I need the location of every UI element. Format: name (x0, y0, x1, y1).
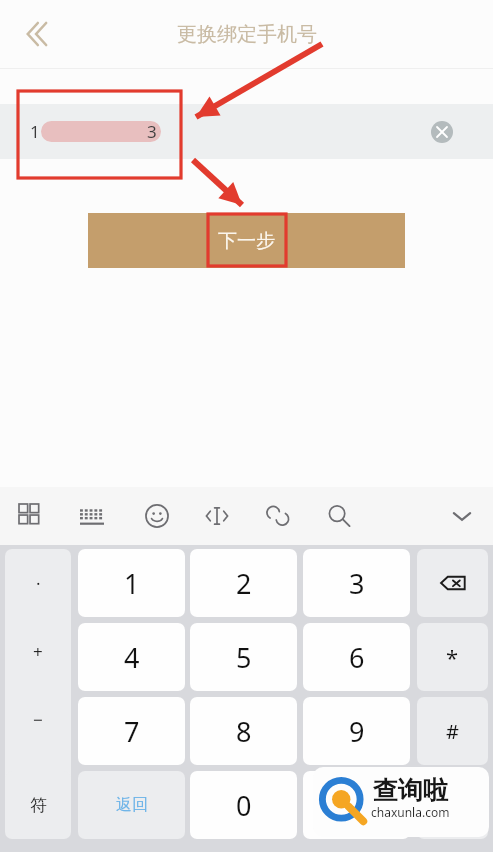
button[interactable]: 2 (190, 549, 297, 617)
staticText: 2 (236, 565, 252, 602)
staticText: 符 (30, 795, 47, 816)
button[interactable]: · (5, 549, 71, 821)
staticText: · (36, 572, 41, 595)
button[interactable]: 下一步 (88, 213, 405, 268)
staticText: 1 (30, 120, 40, 143)
staticText: 9 (349, 713, 365, 750)
staticText: 查询啦 (373, 775, 448, 806)
staticText: # (446, 718, 459, 745)
button[interactable]: 工具 0 (9, 494, 53, 538)
staticText: + (33, 640, 43, 663)
staticText: * (446, 642, 459, 672)
button[interactable]: # (417, 697, 488, 765)
button[interactable]: 8 (190, 697, 297, 765)
staticText: 3 (147, 120, 157, 143)
button[interactable]: 1 (78, 549, 185, 617)
button[interactable]: 清除 (431, 121, 453, 143)
button[interactable]: 工具 5 (317, 494, 361, 538)
button[interactable]: 0 (190, 771, 297, 839)
staticText: 返回 (116, 795, 148, 815)
button[interactable]: 工具 4 (256, 494, 300, 538)
button[interactable]: 1 (0, 104, 493, 159)
staticText: 0 (236, 787, 252, 824)
staticText: 1 (124, 565, 140, 602)
staticText: − (33, 708, 43, 731)
button[interactable]: 5 (190, 623, 297, 691)
button[interactable]: 退格 (417, 549, 488, 617)
button[interactable]: 返回 (78, 771, 185, 839)
button[interactable]: 3 (303, 549, 410, 617)
button[interactable]: 工具 1 (70, 494, 114, 538)
staticText: 3 (349, 565, 365, 602)
button[interactable] (303, 771, 410, 839)
button[interactable]: 7 (78, 697, 185, 765)
staticText: chaxunla.com (371, 804, 450, 820)
staticText: 5 (236, 639, 252, 676)
staticText: / (35, 776, 42, 799)
staticText: 7 (124, 713, 140, 750)
button[interactable]: 返回 (8, 8, 60, 60)
staticText: 更换绑定手机号 (177, 22, 317, 47)
button[interactable]: 收起键盘 (440, 494, 484, 538)
button[interactable]: 9 (303, 697, 410, 765)
button[interactable]: 工具 3 (195, 494, 239, 538)
staticText: 4 (124, 639, 140, 676)
button[interactable]: 6 (303, 623, 410, 691)
button[interactable]: 工具 2 (135, 494, 179, 538)
button[interactable]: * (417, 623, 488, 691)
staticText: 下一步 (218, 229, 275, 253)
button[interactable]: 4 (78, 623, 185, 691)
button[interactable]: 确定 (417, 771, 488, 839)
staticText: 6 (349, 639, 365, 676)
staticText: 8 (236, 713, 252, 750)
button[interactable]: 符 (5, 771, 71, 839)
